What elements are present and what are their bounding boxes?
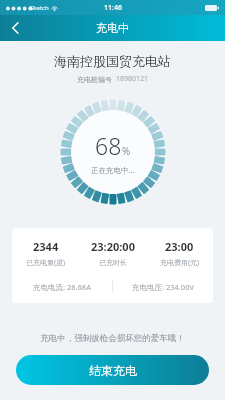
- button[interactable]: 结束充电: [16, 355, 209, 385]
- staticText: 11:46: [104, 3, 122, 13]
- staticText: 68: [95, 130, 122, 161]
- button[interactable]: 2344: [12, 228, 213, 303]
- staticText: 充电电流: 28.68A: [33, 282, 91, 292]
- staticText: 结束充电: [89, 363, 137, 378]
- staticText: 海南控股国贸充电站: [54, 53, 171, 69]
- staticText: 23:20:00: [91, 239, 135, 254]
- staticText: 正在充电中...: [91, 165, 135, 175]
- staticText: %: [122, 144, 131, 158]
- staticText: 已充电量(度): [26, 258, 66, 268]
- staticText: 充电中: [96, 21, 129, 35]
- staticText: 充电费用(元): [160, 258, 200, 268]
- staticText: 2344: [33, 239, 59, 254]
- staticText: 充电电压: 234.00V: [132, 282, 194, 292]
- staticText: 18980121: [116, 74, 149, 84]
- button[interactable]: Back: [0, 15, 30, 41]
- staticText: 23:00: [165, 239, 194, 254]
- staticText: 充电中，强制拔枪会损坏您的爱车哦！: [0, 333, 225, 344]
- staticText: Sketch: [30, 4, 49, 12]
- staticText: 已充时长: [99, 258, 127, 267]
- staticText: 充电桩编号: [77, 75, 112, 84]
